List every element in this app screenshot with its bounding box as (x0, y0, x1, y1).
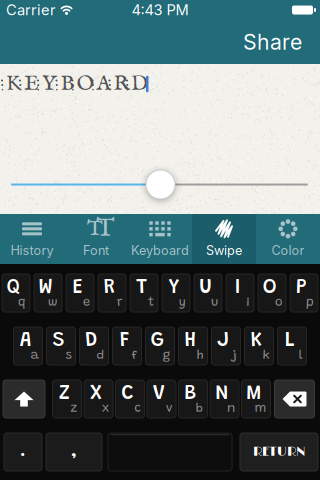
staticText: o (275, 296, 282, 309)
staticText: c (134, 402, 140, 415)
staticText: G (150, 330, 164, 352)
staticText: p (306, 296, 314, 309)
staticText: D (131, 70, 148, 98)
staticText: B (60, 70, 74, 98)
staticText: w (48, 296, 58, 309)
button[interactable]: Shift (3, 380, 45, 418)
button[interactable]: N (210, 380, 239, 418)
staticText: O (262, 277, 276, 299)
staticText: E (24, 70, 39, 98)
button[interactable]: Swipe (192, 214, 256, 264)
staticText: R (113, 70, 129, 98)
staticText: RETURN (253, 444, 305, 460)
staticText: X (89, 383, 102, 405)
button[interactable]: Keyboard (128, 214, 192, 264)
button[interactable]: R (98, 274, 126, 312)
staticText: h (196, 349, 203, 362)
button[interactable]: X (84, 380, 113, 418)
staticText: e (83, 296, 90, 309)
staticText: T (87, 216, 103, 243)
button[interactable]: History (0, 214, 64, 264)
button[interactable]: Space (108, 433, 232, 471)
staticText: s (65, 349, 71, 362)
staticText: Share (243, 29, 302, 55)
staticText: 4:43 PM (131, 1, 188, 19)
staticText: r (117, 296, 122, 309)
staticText: P (296, 277, 307, 299)
button[interactable]: H (178, 327, 207, 365)
button[interactable]: Delete (274, 380, 314, 418)
button[interactable]: . (4, 433, 42, 471)
staticText: M (246, 383, 261, 405)
staticText: V (152, 383, 165, 405)
button[interactable]: G (145, 327, 174, 365)
button[interactable]: J (211, 327, 240, 365)
staticText: K (250, 330, 262, 352)
button[interactable]: K (244, 327, 273, 365)
staticText: t (148, 296, 154, 309)
staticText: Color (271, 243, 304, 258)
staticText: C (121, 383, 133, 405)
staticText: Font (83, 243, 109, 258)
staticText: U (199, 277, 212, 299)
button[interactable]: V (147, 380, 176, 418)
button[interactable]: O (258, 274, 286, 312)
button[interactable]: , (46, 433, 102, 471)
button[interactable]: B (178, 380, 207, 418)
staticText: D (85, 330, 98, 352)
staticText: N (215, 383, 229, 405)
button[interactable]: I (226, 274, 254, 312)
button[interactable]: E (66, 274, 94, 312)
staticText: x (102, 402, 109, 415)
button[interactable]: S (46, 327, 75, 365)
staticText: T (96, 213, 114, 245)
staticText: f (131, 349, 137, 362)
staticText: K (6, 70, 21, 98)
staticText: F (119, 330, 129, 352)
staticText: z (70, 402, 77, 415)
button[interactable]: U (194, 274, 222, 312)
staticText: . (20, 443, 25, 461)
staticText: S (52, 330, 64, 352)
staticText: H (184, 330, 196, 352)
staticText: , (71, 443, 77, 461)
staticText: Carrier (6, 1, 56, 19)
staticText: l (298, 349, 302, 362)
staticText: Y (42, 70, 57, 98)
staticText: q (18, 296, 26, 309)
button[interactable]: Z (52, 380, 81, 418)
button[interactable]: RETURN (240, 433, 318, 471)
staticText: R (103, 277, 115, 299)
staticText: m (254, 402, 266, 415)
staticText: i (246, 296, 250, 309)
button[interactable]: Y (162, 274, 190, 312)
staticText: b (195, 402, 203, 415)
staticText: A (19, 330, 31, 352)
button[interactable]: W (34, 274, 62, 312)
button[interactable]: Q (2, 274, 30, 312)
button[interactable]: T (130, 274, 158, 312)
button[interactable]: Share (243, 29, 320, 55)
staticText: T (136, 277, 147, 299)
staticText: L (284, 330, 294, 352)
staticText: y (179, 296, 186, 309)
button[interactable]: A (13, 327, 42, 365)
staticText: History (10, 243, 53, 258)
staticText: Swipe (206, 243, 242, 258)
staticText: O (76, 70, 94, 98)
button[interactable]: L (277, 327, 306, 365)
button[interactable]: D (79, 327, 108, 365)
staticText: E (72, 277, 82, 299)
button[interactable]: C (115, 380, 144, 418)
staticText: u (211, 296, 218, 309)
button[interactable]: T (64, 214, 128, 264)
button[interactable]: M (241, 380, 270, 418)
staticText: Z (59, 383, 70, 405)
staticText: v (166, 402, 172, 415)
button[interactable]: P (290, 274, 318, 312)
button[interactable]: Color (256, 214, 320, 264)
staticText: k (262, 349, 269, 362)
staticText: Keyboard (131, 243, 189, 258)
button[interactable]: F (112, 327, 141, 365)
staticText: n (227, 402, 235, 415)
